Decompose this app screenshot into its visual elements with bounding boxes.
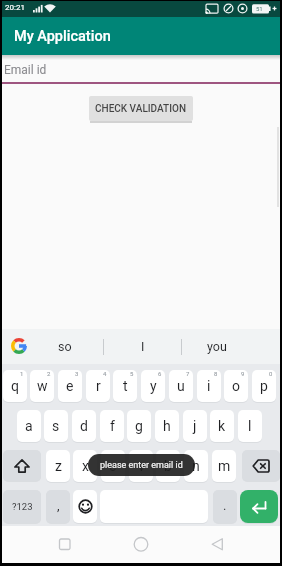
button[interactable]: ?123 (3, 490, 41, 523)
button[interactable]: k (210, 410, 234, 442)
staticText: 2 (47, 370, 51, 377)
staticText: d (80, 418, 88, 434)
button[interactable]: . (213, 490, 237, 523)
staticText: w (37, 378, 48, 394)
button[interactable]: j (183, 410, 207, 442)
button[interactable]: I (104, 329, 181, 364)
staticText: 51 (256, 5, 263, 12)
button[interactable] (240, 490, 278, 523)
staticText: u (177, 378, 185, 394)
staticText: l (248, 418, 252, 434)
button[interactable]: f (100, 410, 124, 442)
staticText: 8 (214, 370, 218, 377)
button[interactable] (73, 490, 97, 523)
staticText: 7 (186, 370, 190, 377)
button[interactable]: h (155, 410, 179, 442)
button[interactable]: g (127, 410, 151, 442)
staticText: x (82, 458, 89, 474)
staticText: q (11, 378, 19, 394)
button[interactable]: r (86, 370, 110, 402)
staticText: 20:21 (5, 3, 25, 12)
button[interactable]: c (101, 450, 125, 482)
button[interactable] (52, 531, 78, 557)
staticText: CHECK VALIDATION (95, 103, 187, 115)
staticText: 0 (269, 370, 273, 377)
staticText: . (223, 498, 227, 513)
staticText: p (260, 378, 268, 394)
button[interactable]: u (169, 370, 193, 402)
button[interactable]: z (46, 450, 70, 482)
staticText: e (66, 378, 74, 394)
button[interactable]: m (212, 450, 236, 482)
staticText: 5 (130, 370, 134, 377)
staticText: k (218, 418, 226, 434)
staticText: n (192, 458, 200, 474)
button[interactable]: d (72, 410, 96, 442)
staticText: t (123, 378, 128, 394)
button[interactable]: l (238, 410, 262, 442)
button[interactable]: o (224, 370, 248, 402)
staticText: i (207, 378, 211, 394)
button[interactable]: b (156, 450, 180, 482)
staticText: My Application (14, 28, 111, 45)
staticText: a (25, 418, 33, 434)
staticText: Email id (4, 63, 47, 77)
staticText: g (135, 418, 143, 434)
button[interactable]: a (17, 410, 41, 442)
button[interactable]: you (181, 329, 282, 364)
button[interactable]: , (46, 490, 70, 523)
staticText: y (150, 378, 157, 394)
button[interactable] (242, 450, 280, 481)
button[interactable]: t (113, 370, 137, 402)
button[interactable]: e (58, 370, 82, 402)
staticText: m (218, 458, 231, 474)
button[interactable]: p (252, 370, 276, 402)
button[interactable]: x (73, 450, 97, 482)
button[interactable]: i (197, 370, 221, 402)
staticText: 4 (103, 370, 107, 377)
staticText: please enter email id (100, 460, 183, 471)
staticText: c (109, 458, 117, 474)
button[interactable]: y (141, 370, 165, 402)
staticText: z (55, 458, 62, 474)
button[interactable]: q (3, 370, 27, 402)
button[interactable]: w (30, 370, 54, 402)
staticText: b (164, 458, 172, 474)
staticText: h (163, 418, 171, 434)
button[interactable]: n (184, 450, 208, 482)
staticText: so (58, 339, 72, 354)
staticText: ?123 (12, 501, 33, 512)
staticText: 9 (241, 370, 245, 377)
staticText: , (57, 498, 60, 513)
button[interactable]: so (27, 329, 103, 364)
button[interactable]: v (129, 450, 153, 482)
staticText: v (138, 458, 145, 474)
staticText: j (193, 418, 197, 434)
button[interactable]: s (44, 410, 68, 442)
staticText: you (207, 339, 227, 354)
staticText: o (232, 378, 240, 394)
button[interactable]: Email id (0, 60, 282, 84)
button[interactable] (128, 531, 154, 557)
staticText: I (141, 339, 145, 354)
staticText: r (96, 378, 101, 394)
staticText: 1 (20, 370, 24, 377)
staticText: s (52, 418, 60, 434)
button[interactable] (3, 450, 41, 481)
staticText: f (110, 418, 115, 434)
staticText: 3 (75, 370, 79, 377)
button[interactable] (204, 531, 230, 557)
staticText: 6 (158, 370, 162, 377)
button[interactable]: CHECK VALIDATION (89, 96, 193, 121)
